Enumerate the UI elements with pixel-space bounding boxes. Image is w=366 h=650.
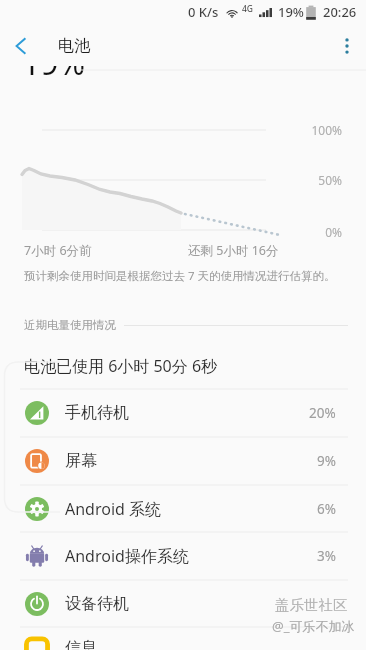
staticText: 100% <box>0 122 342 138</box>
staticText: 近期电量使用情况 <box>24 318 116 332</box>
staticText: 盖乐世社区 <box>275 596 348 614</box>
staticText: 6% <box>317 500 336 518</box>
button[interactable]: 手机待机 <box>0 389 366 436</box>
staticText: Android操作系统 <box>65 545 189 567</box>
staticText: 4G <box>242 3 254 15</box>
staticText: @_可乐不加冰 <box>272 617 355 635</box>
staticText: 20:26 <box>323 3 357 21</box>
button[interactable]: Android 系统 <box>0 485 366 532</box>
staticText: 7小时 6分前 <box>24 242 92 259</box>
staticText: Android 系统 <box>65 498 162 520</box>
staticText: 电池已使用 6小时 50分 6秒 <box>24 355 218 377</box>
staticText: 9% <box>317 452 336 470</box>
staticText: 信息 <box>65 638 97 650</box>
staticText: 20% <box>309 404 336 422</box>
staticText: 设备待机 <box>65 594 129 614</box>
staticText: 19% <box>22 41 86 85</box>
button[interactable]: Back <box>0 26 40 66</box>
button[interactable]: 设备待机 <box>0 580 366 627</box>
button[interactable]: More options <box>328 27 366 65</box>
staticText: 预计剩余使用时间是根据您过去 7 天的使用情况进行估算的。 <box>24 268 336 284</box>
staticText: 屏幕 <box>65 451 97 471</box>
staticText: 0 K/s <box>188 3 219 21</box>
staticText: 3% <box>317 547 336 565</box>
staticText: 19% <box>278 3 304 21</box>
button[interactable]: Android操作系统 <box>0 532 366 579</box>
staticText: 手机待机 <box>65 403 129 423</box>
button[interactable]: 信息 <box>0 624 366 650</box>
staticText: 电池 <box>58 36 90 56</box>
button[interactable]: 屏幕 <box>0 437 366 484</box>
staticText: 50% <box>0 172 342 188</box>
staticText: 0% <box>0 224 342 240</box>
staticText: 还剩 5小时 16分 <box>188 242 279 259</box>
